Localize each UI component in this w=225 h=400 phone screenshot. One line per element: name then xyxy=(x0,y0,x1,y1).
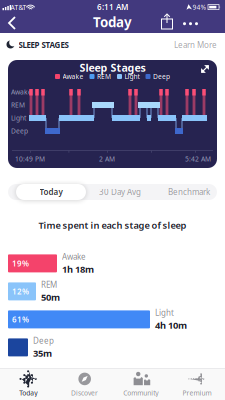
staticText: 30 Day Avg xyxy=(99,187,141,197)
staticText: Today xyxy=(93,13,132,31)
staticText: Light xyxy=(155,307,174,318)
button[interactable]: Premium xyxy=(169,369,225,400)
staticText: Sleep Stages xyxy=(79,60,145,75)
staticText: Today xyxy=(19,388,37,397)
staticText: Awake xyxy=(11,88,32,96)
staticText: Deep xyxy=(33,335,54,346)
button[interactable]: Expand xyxy=(198,62,211,75)
button[interactable]: Today xyxy=(0,369,56,400)
staticText: 35m xyxy=(33,347,52,359)
staticText: Learn More xyxy=(174,40,217,50)
staticText: Deep xyxy=(11,127,28,135)
staticText: Discover xyxy=(71,388,98,397)
button[interactable]: Benchmark xyxy=(156,184,222,200)
staticText: 94% xyxy=(192,3,206,12)
staticText: 1h 18m xyxy=(62,263,94,275)
staticText: 12% xyxy=(12,286,29,297)
staticText: 61% xyxy=(12,314,29,325)
staticText: REM xyxy=(41,279,57,290)
staticText: 50m xyxy=(41,291,60,303)
staticText: Time spent in each stage of sleep xyxy=(38,219,186,231)
button[interactable]: 30 Day Avg xyxy=(87,184,153,200)
button[interactable]: Discover xyxy=(56,369,112,400)
staticText: 10:49 PM xyxy=(15,155,45,163)
staticText: Awake xyxy=(62,251,86,262)
staticText: REM xyxy=(97,72,111,81)
staticText: AT&T xyxy=(10,3,26,12)
button[interactable]: Community xyxy=(112,369,169,400)
button[interactable]: Back xyxy=(5,15,19,31)
staticText: 19% xyxy=(12,258,29,269)
staticText: 5:42 AM xyxy=(185,155,211,163)
staticText: Today xyxy=(39,187,62,197)
staticText: 4h 10m xyxy=(155,319,187,331)
staticText: Premium xyxy=(182,388,211,397)
staticText: Awake xyxy=(62,72,83,81)
staticText: 6:11 AM xyxy=(97,2,128,12)
staticText: Light xyxy=(124,72,139,81)
button[interactable]: Learn More xyxy=(174,40,217,50)
staticText: Community xyxy=(123,388,158,397)
staticText: REM xyxy=(11,101,25,109)
staticText: Light xyxy=(11,114,26,122)
staticText: SLEEP STAGES xyxy=(18,40,68,50)
staticText: 2 AM xyxy=(99,155,115,163)
button[interactable]: More xyxy=(183,20,199,28)
button[interactable]: Share xyxy=(159,13,175,31)
staticText: Benchmark xyxy=(168,187,210,197)
button[interactable]: Today xyxy=(16,184,86,200)
staticText: Deep xyxy=(153,72,170,81)
